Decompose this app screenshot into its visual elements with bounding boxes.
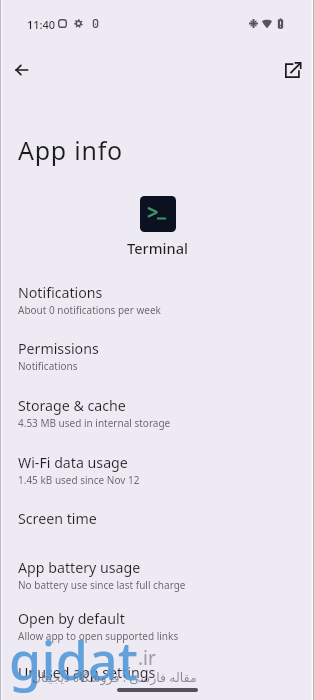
- staticText: 1.45 kB used since Nov 12: [18, 473, 140, 487]
- staticText: مقاله فارسی : فروشگاه دیجیتال: [32, 669, 197, 686]
- staticText: Screen time: [18, 509, 97, 528]
- staticText: Notifications: [18, 283, 103, 302]
- button[interactable]: Storage & cache: [0, 396, 314, 429]
- staticText: Allow app to open supported links: [18, 629, 179, 643]
- staticText: Permissions: [18, 339, 99, 358]
- staticText: Storage & cache: [18, 396, 126, 415]
- staticText: 11:40: [27, 17, 56, 32]
- staticText: No battery use since last full charge: [18, 578, 186, 592]
- staticText: 4.53 MB used in internal storage: [18, 416, 171, 430]
- button[interactable]: Permissions: [0, 339, 314, 372]
- button[interactable]: Open by default: [0, 609, 314, 642]
- staticText: Unused app settings: [18, 663, 156, 682]
- button[interactable]: Open in new window: [279, 56, 307, 84]
- staticText: App battery usage: [18, 558, 141, 577]
- button[interactable]: App battery usage: [0, 558, 314, 591]
- staticText: About 0 notifications per week: [18, 303, 161, 317]
- staticText: App info: [18, 133, 123, 167]
- staticText: .ir: [138, 645, 156, 671]
- staticText: Wi-Fi data usage: [18, 453, 128, 472]
- button[interactable]: Notifications: [0, 283, 314, 316]
- button[interactable]: Unused app settings: [0, 663, 314, 682]
- staticText: Notifications: [18, 359, 78, 373]
- button[interactable]: Wi-Fi data usage: [0, 453, 314, 486]
- button[interactable]: Screen time: [0, 509, 314, 528]
- staticText: Open by default: [18, 609, 125, 628]
- staticText: Terminal: [127, 238, 188, 258]
- staticText: gidat: [9, 624, 139, 695]
- button[interactable]: Back: [8, 56, 36, 84]
